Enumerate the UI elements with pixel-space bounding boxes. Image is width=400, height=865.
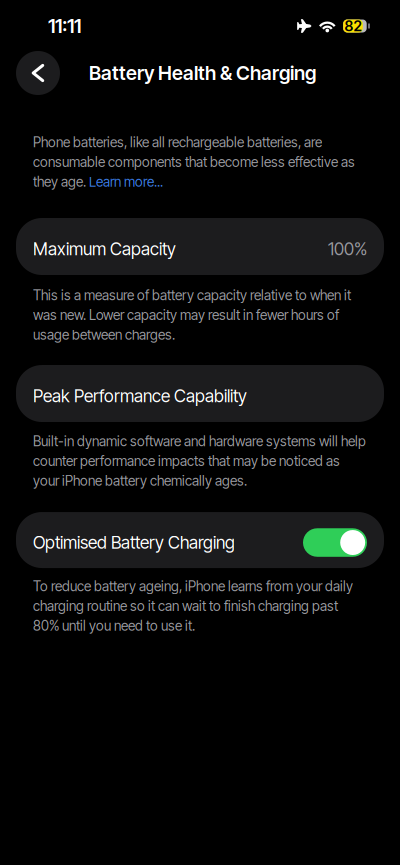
staticText: 82 [344, 17, 361, 35]
staticText: 100% [328, 238, 367, 259]
staticText: Phone batteries, like all rechargeable b… [33, 134, 322, 150]
staticText: To reduce battery ageing, iPhone learns … [33, 578, 353, 594]
staticText: Peak Performance Capability [33, 385, 247, 406]
button[interactable]: Back [16, 51, 60, 95]
staticText: usage between charges. [33, 326, 175, 343]
button[interactable]: Peak Performance Capability [0, 365, 400, 422]
staticText: 11:11 [48, 14, 81, 38]
staticText: Learn more... [89, 173, 163, 190]
staticText: consumable components that become less e… [33, 154, 355, 170]
staticText: Battery Health & Charging [89, 61, 316, 85]
button[interactable]: Optimised Battery Charging [0, 512, 400, 568]
staticText: was new. Lower capacity may result in fe… [33, 307, 339, 323]
staticText: charging routine so it can wait to finis… [33, 598, 338, 614]
staticText: 80% until you need to use it. [33, 617, 195, 634]
button[interactable]: Learn more... [89, 173, 163, 190]
staticText: your iPhone battery chemically ages. [33, 472, 247, 489]
staticText: Optimised Battery Charging [33, 532, 235, 553]
staticText: Maximum Capacity [33, 238, 176, 259]
staticText: Built-in dynamic software and hardware s… [33, 433, 366, 449]
staticText: they age. [33, 173, 86, 190]
button[interactable]: Maximum Capacity [0, 218, 400, 275]
staticText: This is a measure of battery capacity re… [33, 287, 351, 303]
staticText: counter performance impacts that may be … [33, 453, 340, 469]
